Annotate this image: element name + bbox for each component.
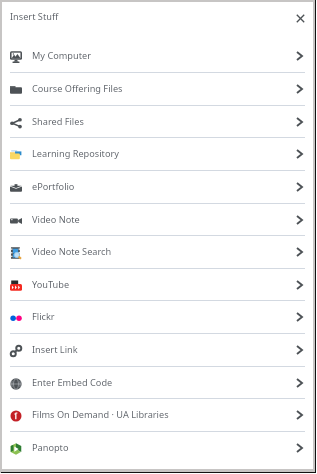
staticText: Shared Files: [32, 115, 292, 128]
button[interactable]: Insert Link: [2, 333, 313, 366]
staticText: ePortfolio: [32, 180, 292, 193]
staticText: Insert Link: [32, 343, 292, 356]
staticText: Course Offering Files: [32, 82, 292, 95]
button[interactable]: Course Offering Files: [2, 72, 313, 105]
staticText: Learning Repository: [32, 147, 292, 160]
staticText: Enter Embed Code: [32, 376, 292, 389]
button[interactable]: Enter Embed Code: [2, 366, 313, 399]
button[interactable]: ePortfolio: [2, 170, 313, 203]
button[interactable]: Video Note Search: [2, 235, 313, 268]
staticText: Insert Stuff: [10, 10, 59, 23]
staticText: Panopto: [32, 441, 292, 454]
button[interactable]: YouTube: [2, 268, 313, 301]
button[interactable]: Video Note: [2, 203, 313, 236]
button[interactable]: Shared Files: [2, 105, 313, 138]
button[interactable]: My Computer: [2, 39, 313, 72]
staticText: Video Note Search: [32, 245, 292, 258]
staticText: Video Note: [32, 213, 292, 226]
staticText: My Computer: [32, 49, 292, 62]
button[interactable]: Learning Repository: [2, 137, 313, 170]
staticText: Flickr: [32, 310, 292, 323]
staticText: YouTube: [32, 278, 292, 291]
button[interactable]: Flickr: [2, 300, 313, 333]
staticText: Films On Demand · UA Libraries: [32, 408, 292, 421]
button[interactable]: Panopto: [2, 431, 313, 464]
button[interactable]: Films On Demand · UA Libraries: [2, 398, 313, 431]
button[interactable]: Close: [291, 9, 309, 27]
